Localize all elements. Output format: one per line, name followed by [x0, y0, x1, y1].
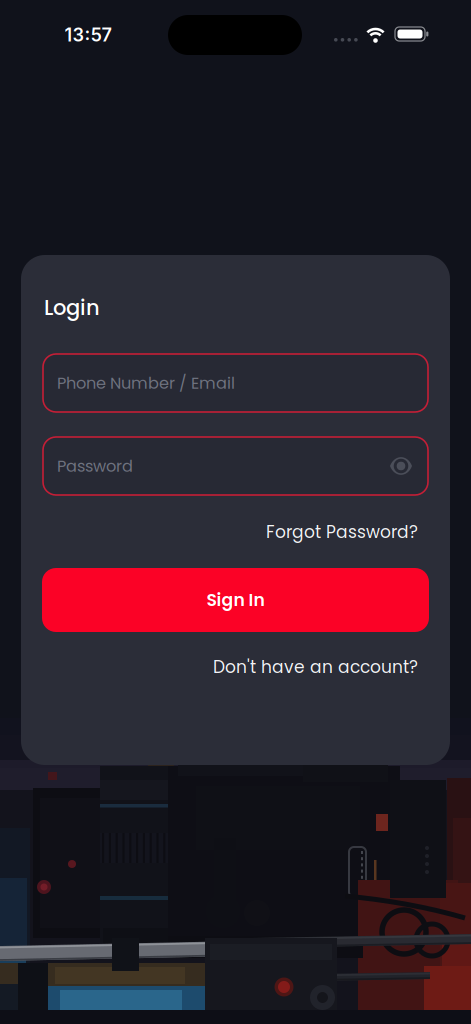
- staticText: Sign In: [206, 588, 264, 612]
- button[interactable]: Sign In: [42, 568, 429, 632]
- staticText: Login: [44, 293, 100, 322]
- button[interactable]: Forgot Password?: [266, 520, 418, 544]
- button[interactable]: Password: [43, 437, 428, 495]
- button[interactable]: Don't have an account?: [213, 655, 418, 679]
- staticText: 13:57: [64, 24, 111, 46]
- staticText: Forgot Password?: [266, 520, 418, 544]
- staticText: Don't have an account?: [213, 655, 418, 679]
- staticText: Phone Number / Email: [57, 372, 235, 394]
- button[interactable]: Phone Number / Email: [43, 354, 428, 412]
- staticText: Password: [57, 455, 133, 477]
